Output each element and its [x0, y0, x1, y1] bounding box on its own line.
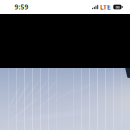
staticText: 9:59	[14, 3, 28, 11]
staticText: 88	[115, 4, 119, 10]
staticText: LTE	[100, 3, 111, 11]
